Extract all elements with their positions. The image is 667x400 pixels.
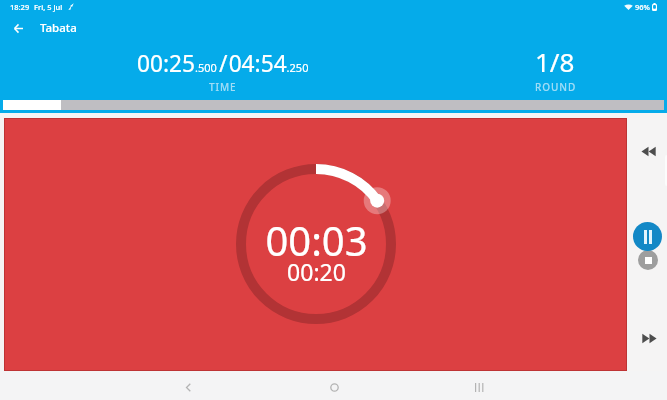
staticText: Fri, 5 Jul <box>34 2 63 12</box>
staticText: 18:29 <box>10 2 30 12</box>
button[interactable]: Stop <box>638 250 658 270</box>
staticText: 00:25.500 / 04:54.250 <box>137 48 309 79</box>
button[interactable]: Back <box>7 17 29 39</box>
staticText: ROUND <box>535 80 577 94</box>
staticText: Tabata <box>40 20 77 36</box>
button[interactable]: Home <box>316 373 352 400</box>
button[interactable]: Pause <box>633 222 662 251</box>
staticText: 00:03 <box>265 213 368 267</box>
staticText: 96% <box>635 2 650 12</box>
staticText: 1/8 <box>535 44 575 79</box>
staticText: 00:20 <box>287 256 346 287</box>
button[interactable]: Back <box>170 373 206 400</box>
staticText: TIME <box>209 80 237 94</box>
button[interactable]: Recent apps <box>461 373 497 400</box>
button[interactable]: Next interval <box>634 323 664 353</box>
button[interactable]: Previous interval <box>633 136 663 166</box>
